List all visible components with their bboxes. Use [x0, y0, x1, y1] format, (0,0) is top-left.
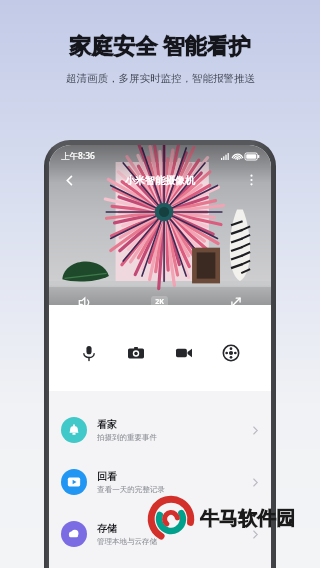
button[interactable]: Microphone	[72, 336, 106, 370]
staticText: 回看	[97, 470, 117, 483]
staticText: 小米智能摄像机	[125, 174, 195, 187]
button[interactable]: 看家	[49, 407, 271, 453]
button[interactable]: 2K	[151, 296, 168, 308]
button[interactable]: More options	[239, 168, 263, 192]
button[interactable]: Pan and tilt	[214, 336, 248, 370]
button[interactable]: Fullscreen	[225, 291, 247, 313]
staticText: 看家	[97, 418, 117, 431]
staticText: 2K	[155, 297, 164, 307]
button[interactable]: 回看	[49, 459, 271, 505]
button[interactable]: Take photo	[119, 336, 153, 370]
staticText: 上午8:36	[61, 150, 95, 162]
button[interactable]: Mute	[73, 291, 95, 313]
button[interactable]: Record video	[167, 336, 201, 370]
staticText: 家庭安全 智能看护	[69, 30, 251, 60]
staticText: 拍摄到的重要事件	[97, 433, 157, 442]
staticText: 查看一天的完整记录	[97, 485, 165, 494]
staticText: 管理本地与云存储	[97, 537, 157, 546]
button[interactable]: Back	[57, 168, 81, 192]
button[interactable]: 存储	[49, 511, 271, 557]
staticText: 存储	[97, 522, 117, 535]
staticText: 超清画质，多屏实时监控，智能报警推送	[66, 72, 255, 85]
staticText: 牛马软件园	[200, 507, 295, 531]
